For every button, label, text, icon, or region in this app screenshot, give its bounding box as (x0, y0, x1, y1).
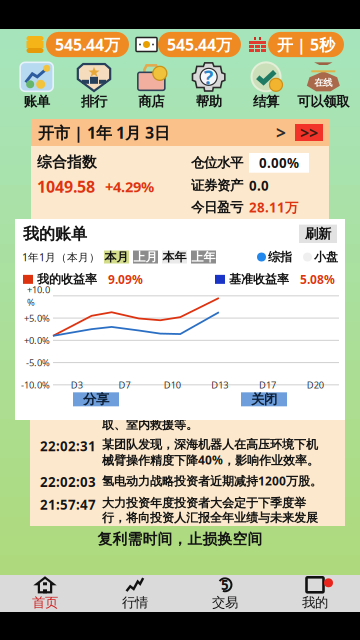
button[interactable]: 本月 (104, 250, 129, 263)
staticText: 开市 | 1年 1月 3日 (38, 122, 170, 143)
button[interactable]: Fast forward (295, 124, 323, 141)
button[interactable]: 账单 (8, 62, 65, 110)
staticText: 545.44万 (167, 34, 232, 55)
staticText: D10 (164, 379, 181, 391)
staticText: 结算 (253, 93, 279, 110)
button[interactable]: Market day timer (248, 32, 344, 57)
button[interactable]: 分享 (73, 392, 119, 406)
staticText: +0.0% (24, 334, 50, 346)
button[interactable]: 在线 (295, 62, 352, 110)
staticText: 我的账单 (23, 224, 87, 244)
staticText: 行情 (122, 594, 148, 611)
staticText: 545.44万 (55, 34, 120, 55)
button[interactable]: 5 (180, 572, 270, 615)
staticText: 分享 (83, 391, 109, 407)
staticText: 1年1月（本月） (22, 250, 100, 264)
staticText: 仓位水平 (191, 155, 243, 171)
staticText: 5.08% (300, 271, 335, 287)
staticText: 排行 (81, 93, 107, 110)
button[interactable]: 本年 (162, 250, 187, 263)
staticText: 22:02:31 (40, 437, 96, 455)
staticText: ? (204, 63, 214, 90)
staticText: 综指 (268, 250, 292, 264)
button[interactable]: 首页 (0, 572, 90, 615)
button[interactable]: 上年 (191, 250, 216, 263)
button[interactable]: ? (180, 62, 237, 110)
staticText: 开 | 5秒 (277, 34, 335, 55)
button[interactable]: Cash balance (136, 32, 241, 57)
staticText: 我的收益率 (37, 272, 97, 287)
staticText: 22:02:58 (40, 388, 96, 406)
staticText: D13 (211, 379, 228, 391)
staticText: 首页 (32, 594, 58, 611)
staticText: 小盘 (314, 250, 338, 264)
staticText: +5.0% (24, 312, 50, 324)
staticText: 0.00% (259, 154, 299, 172)
staticText: 某团队发现，深海机器人在高压环境下机 械臂操作精度下降40%，影响作业效率。 (102, 437, 319, 468)
staticText: 账单 (24, 93, 50, 110)
staticText: > (276, 121, 286, 144)
button[interactable]: 行情 (90, 572, 180, 615)
staticText: 交易 (212, 594, 238, 611)
button[interactable]: 结算 (237, 62, 295, 110)
staticText: 本年 (162, 250, 186, 264)
staticText: 我的 (302, 594, 328, 611)
button[interactable]: Gold balance (25, 32, 129, 57)
staticText: 5 (221, 576, 229, 594)
staticText: 关闭 (251, 391, 277, 407)
button[interactable]: 排行 (65, 62, 123, 110)
staticText: 0.0 (249, 177, 269, 194)
staticText: 21:57:47 (40, 496, 96, 513)
staticText: +4.29% (105, 177, 154, 196)
staticText: 28.11万 (249, 198, 298, 216)
staticText: 上月 (133, 250, 157, 264)
staticText: +10.0% (27, 283, 50, 308)
staticText: 1049.58 (37, 176, 95, 197)
button[interactable]: 刷新 (299, 225, 337, 243)
staticText: 上年 (191, 250, 215, 264)
button[interactable]: 关闭 (241, 392, 287, 406)
button[interactable]: 上月 (133, 250, 158, 263)
staticText: -10.0% (21, 379, 50, 391)
staticText: D20 (307, 379, 324, 391)
staticText: D17 (259, 379, 276, 391)
staticText: 刷新 (305, 226, 331, 242)
staticText: 本月 (104, 250, 128, 264)
staticText: >> (300, 122, 318, 143)
staticText: 基准收益率 (229, 272, 289, 287)
staticText: 证券资产 (191, 177, 243, 194)
staticText: 帮助 (196, 93, 222, 110)
staticText: 22:02:03 (40, 473, 96, 491)
staticText: 今日盈亏 (191, 199, 243, 215)
button[interactable]: 商店 (123, 62, 180, 110)
staticText: D3 (71, 379, 83, 391)
staticText: 在线 (314, 77, 332, 88)
staticText: 综合指数 (37, 153, 97, 171)
button[interactable]: 小盘 (303, 250, 338, 264)
button[interactable]: 我的 (270, 572, 360, 615)
staticText: 新型深海探测设备完成海试，可用于温 度、测距等；应用范围包括救援、智能抓 取、室… (102, 388, 318, 432)
button[interactable]: Next day (271, 124, 291, 141)
staticText: -5.0% (26, 356, 50, 369)
button[interactable]: 综指 (257, 250, 292, 264)
staticText: 复利需时间，止损换空间 (97, 530, 262, 548)
staticText: 氢电动力战略投资者近期减持1200万股。 (102, 473, 322, 489)
staticText: 可以领取 (297, 93, 349, 110)
staticText: 9.09% (108, 271, 143, 287)
staticText: D7 (118, 379, 130, 391)
staticText: 大力投资年度投资者大会定于下季度举 行，将向投资人汇报全年业绩与未来发展 (102, 496, 318, 525)
staticText: 商店 (138, 93, 164, 110)
